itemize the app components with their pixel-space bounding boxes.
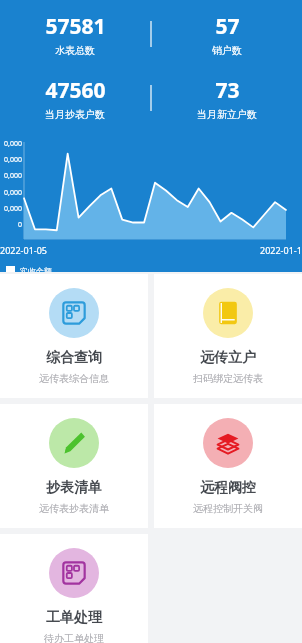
other: 抄表清单 [61, 430, 87, 456]
staticText: 综合查询 [46, 349, 102, 367]
other: 远传立户 [215, 300, 241, 326]
button[interactable]: 工单处理 [0, 534, 148, 643]
staticText: 47560 [45, 76, 106, 105]
staticText: 待办工单处理 [44, 632, 104, 643]
staticText: 水表总数 [55, 44, 95, 57]
staticText: 73 [215, 76, 240, 105]
staticText: 2022-01-1 [260, 244, 302, 256]
staticText: 2022-01-05 [0, 244, 47, 256]
other: 工单处理 [61, 560, 87, 586]
staticText: 57 [215, 12, 240, 41]
staticText: 实收金额 [20, 266, 52, 272]
staticText: 远程阀控 [200, 479, 256, 497]
staticText: 销户数 [212, 44, 242, 57]
button[interactable]: 远传立户 [154, 274, 302, 398]
staticText: 远传表抄表清单 [39, 502, 109, 515]
staticText: 0,000 [0, 204, 22, 214]
staticText: 工单处理 [46, 609, 102, 627]
staticText: 远传立户 [200, 349, 256, 367]
button[interactable]: 综合查询 [0, 274, 148, 398]
staticText: 远传表综合信息 [39, 372, 109, 385]
button[interactable]: 抄表清单 [0, 404, 148, 528]
other: 远程阀控 [215, 430, 241, 456]
other: 综合查询 [61, 300, 87, 326]
staticText: 0,000 [0, 155, 22, 165]
staticText: 远程控制开关阀 [193, 502, 263, 515]
staticText: 0,000 [0, 139, 22, 149]
staticText: 当月新立户数 [197, 108, 257, 121]
staticText: 扫码绑定远传表 [193, 372, 263, 385]
staticText: 0,000 [0, 171, 22, 181]
staticText: 抄表清单 [46, 479, 102, 497]
staticText: 0 [0, 220, 22, 230]
staticText: 57581 [45, 12, 106, 41]
button[interactable]: 远程阀控 [154, 404, 302, 528]
staticText: 当月抄表户数 [45, 108, 105, 121]
staticText: 0,000 [0, 188, 22, 198]
